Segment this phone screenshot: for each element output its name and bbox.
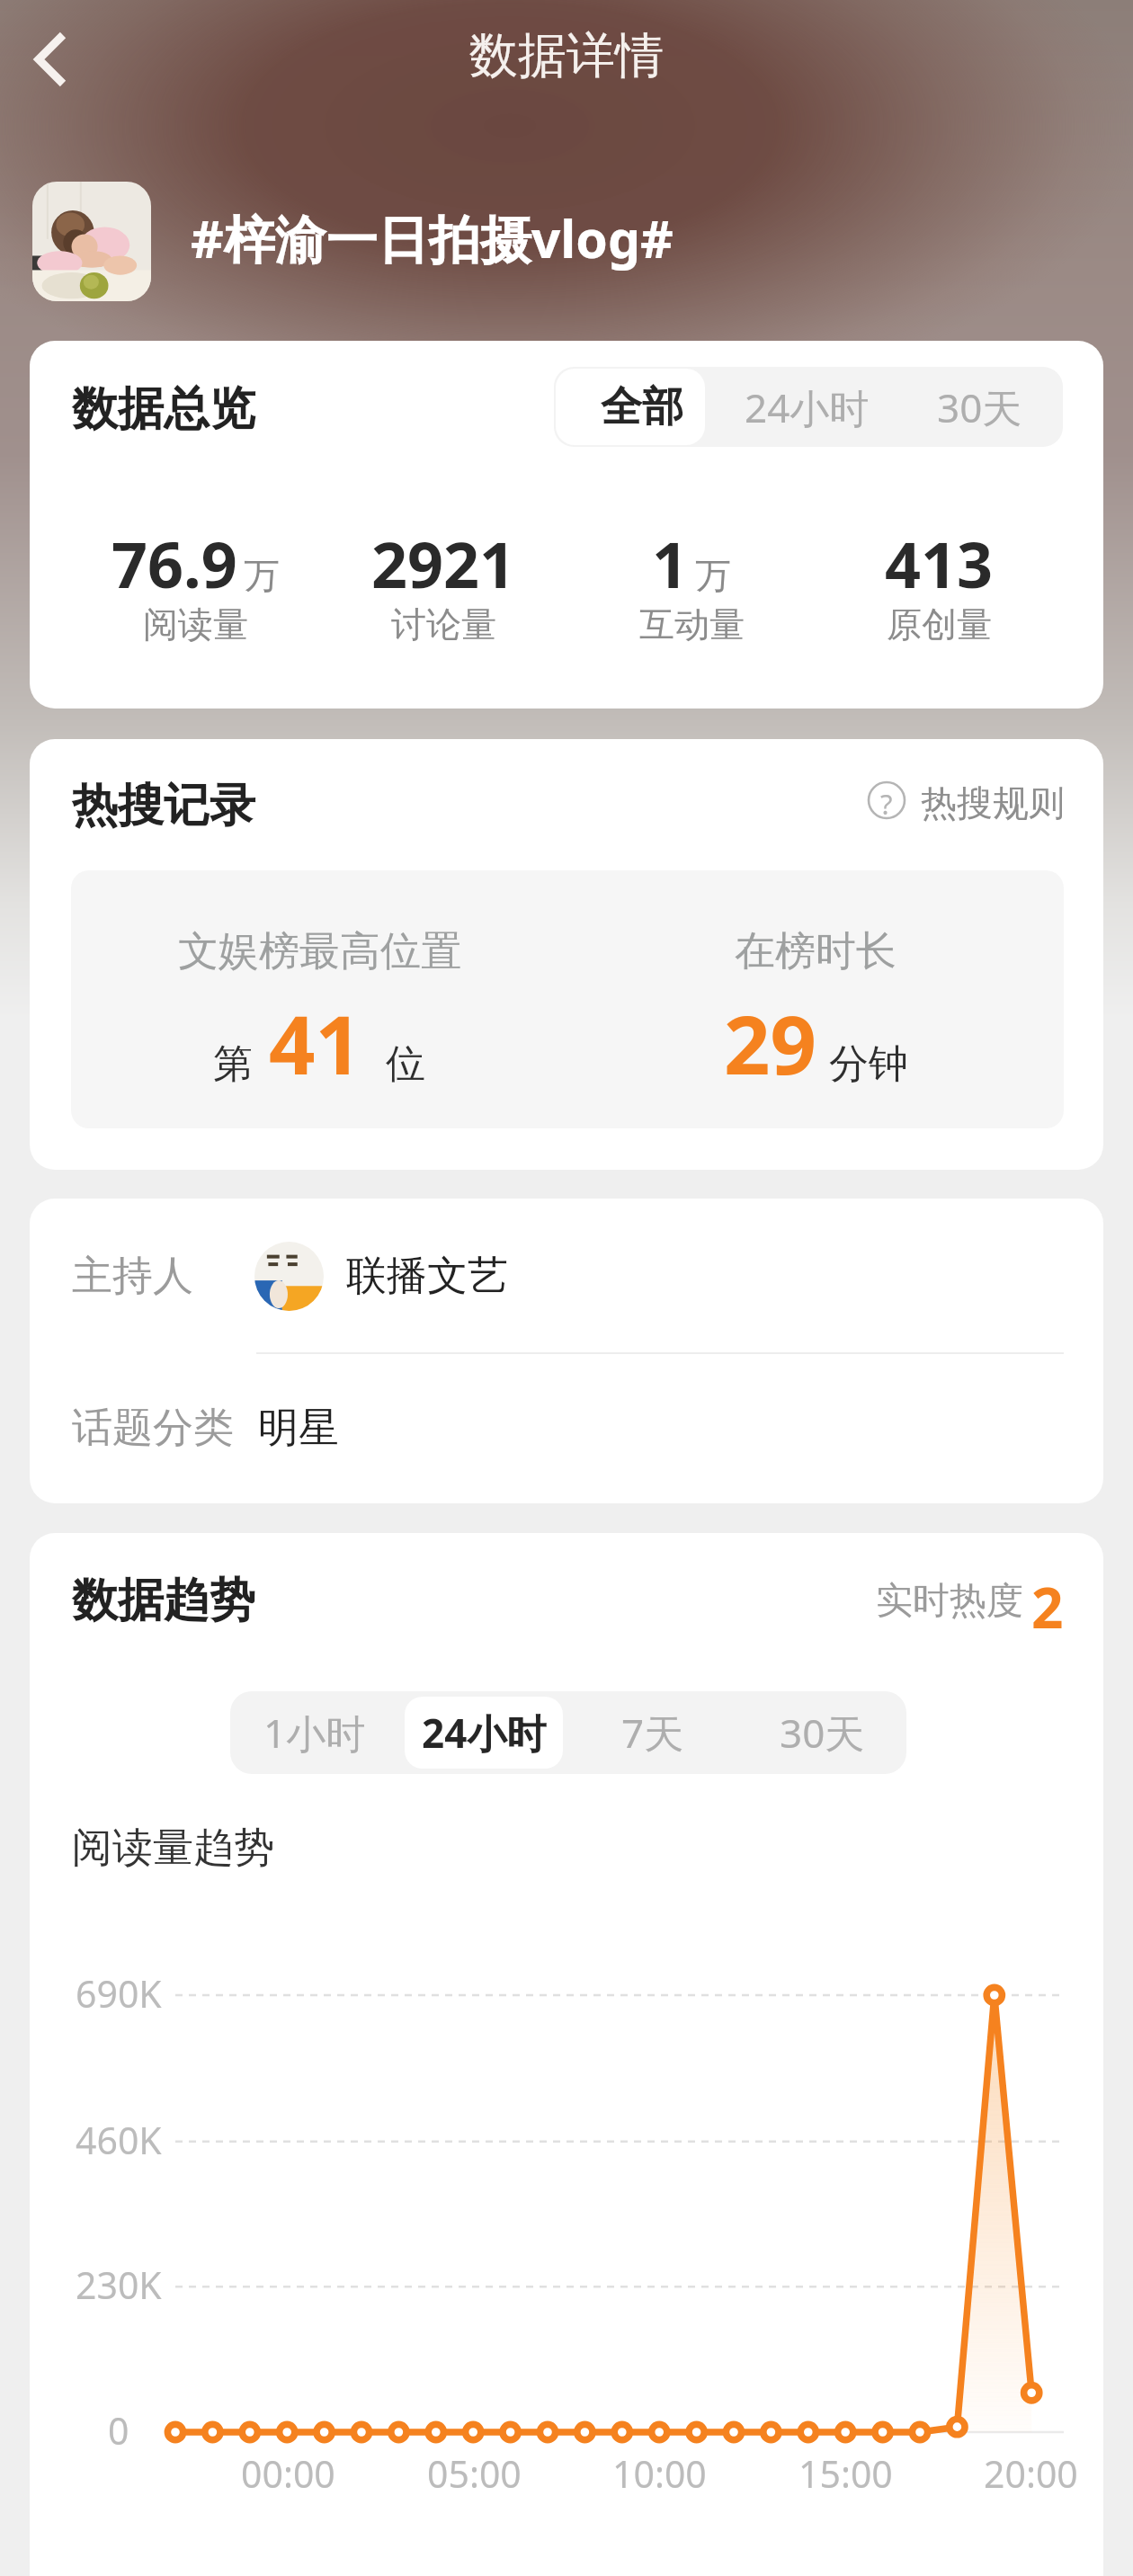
staticText: 7天 — [621, 1706, 684, 1760]
staticText: 万 — [695, 553, 731, 598]
staticText: 互动量 — [639, 602, 745, 646]
staticText: 41 — [269, 988, 361, 1099]
staticText: 30天 — [937, 380, 1022, 434]
staticText: 在榜时长 — [735, 926, 897, 977]
staticText: 阅读量 — [143, 602, 248, 646]
staticText: 全部 — [601, 381, 683, 433]
staticText: 76.9 — [112, 521, 237, 606]
staticText: 万 — [244, 553, 280, 598]
staticText: 230K — [76, 2260, 162, 2310]
staticText: 讨论量 — [391, 602, 496, 646]
staticText: 30天 — [780, 1706, 865, 1760]
button[interactable]: 24小时 — [405, 1697, 563, 1769]
staticText: 29 — [724, 988, 816, 1099]
staticText: 原创量 — [887, 602, 992, 646]
staticText: 话题分类 — [72, 1403, 234, 1454]
staticText: 文娱榜最高位置 — [178, 926, 461, 977]
button[interactable]: 30天 — [743, 1697, 901, 1769]
button[interactable]: 24小时 — [708, 367, 906, 447]
button[interactable]: 全部 — [556, 369, 705, 445]
staticText: 数据趋势 — [72, 1572, 255, 1629]
button[interactable]: 30天 — [880, 367, 1063, 447]
staticText: 24小时 — [745, 380, 870, 434]
staticText: 15:00 — [798, 2448, 893, 2499]
staticText: 联播文艺 — [346, 1251, 508, 1302]
staticText: 1 — [652, 521, 689, 606]
button[interactable] — [32, 182, 151, 301]
staticText: 690K — [76, 1968, 162, 2019]
staticText: 热搜记录 — [72, 777, 255, 834]
staticText: #梓渝一日拍摄vlog# — [191, 203, 674, 273]
staticText: 460K — [76, 2115, 162, 2165]
button[interactable]: 主持人 — [72, 1199, 1103, 1353]
staticText: 10:00 — [612, 2448, 707, 2499]
staticText: 主持人 — [72, 1251, 193, 1302]
staticText: ? — [880, 785, 893, 823]
staticText: 阅读量趋势 — [72, 1823, 274, 1874]
staticText: 数据总览 — [72, 380, 255, 438]
staticText: 0 — [108, 2405, 129, 2456]
staticText: 413 — [885, 521, 994, 606]
staticText: 2 — [1031, 1569, 1064, 1645]
button[interactable]: ? — [862, 773, 1060, 827]
staticText: 分钟 — [829, 1039, 908, 1089]
staticText: 20:00 — [984, 2448, 1078, 2499]
staticText: 位 — [386, 1039, 425, 1089]
staticText: 实时热度 — [876, 1578, 1023, 1625]
staticText: 第 — [213, 1039, 253, 1089]
button[interactable]: 7天 — [574, 1697, 732, 1769]
staticText: 24小时 — [422, 1706, 547, 1760]
staticText: 05:00 — [427, 2448, 522, 2499]
staticText: 热搜规则 — [921, 780, 1065, 825]
staticText: 明星 — [258, 1403, 339, 1454]
staticText: 1小时 — [263, 1706, 366, 1760]
staticText: 00:00 — [241, 2448, 335, 2499]
staticText: 2921 — [371, 521, 516, 606]
button[interactable]: Back — [0, 0, 135, 121]
button[interactable]: 1小时 — [236, 1697, 394, 1769]
staticText: 数据详情 — [469, 25, 664, 86]
